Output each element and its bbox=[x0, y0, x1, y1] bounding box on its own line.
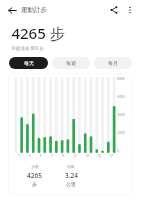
staticText: 4000 bbox=[117, 113, 125, 117]
staticText: 4265 bbox=[27, 171, 42, 180]
staticText: 3 bbox=[29, 154, 31, 158]
staticText: 每月 bbox=[108, 60, 118, 66]
staticText: 15 bbox=[97, 154, 101, 158]
button[interactable]: 距離 bbox=[53, 165, 89, 187]
button[interactable]: 每月 bbox=[94, 57, 132, 69]
staticText: 7 bbox=[51, 154, 53, 158]
staticText: 6000 bbox=[117, 95, 125, 99]
staticText: 0 bbox=[117, 149, 119, 153]
staticText: 11 bbox=[73, 154, 77, 158]
staticText: 8000 bbox=[117, 77, 125, 81]
button[interactable]: More options bbox=[122, 2, 138, 18]
staticText: 目標達成 800 步 bbox=[11, 45, 44, 51]
button[interactable]: 步數 bbox=[16, 165, 53, 187]
staticText: 5 bbox=[40, 154, 42, 158]
button[interactable]: Share bbox=[106, 2, 122, 18]
staticText: 1 bbox=[18, 154, 20, 158]
staticText: 步 bbox=[32, 181, 37, 187]
staticText: 17 bbox=[109, 154, 113, 158]
staticText: 步數 bbox=[31, 165, 39, 170]
staticText: 每週 bbox=[66, 60, 76, 66]
staticText: 13 bbox=[85, 154, 89, 158]
button[interactable]: Back bbox=[4, 2, 20, 18]
staticText: 2000 bbox=[117, 131, 125, 135]
staticText: 9 bbox=[62, 154, 64, 158]
staticText: 4265 步 bbox=[11, 23, 65, 43]
staticText: 距離 bbox=[67, 165, 75, 170]
button[interactable]: 每天 bbox=[9, 57, 48, 69]
staticText: 每天 bbox=[24, 60, 34, 66]
staticText: 3.24 bbox=[65, 171, 78, 180]
staticText: 運動計步 bbox=[21, 6, 47, 14]
button[interactable]: 每週 bbox=[52, 57, 90, 69]
staticText: 公里 bbox=[66, 181, 76, 187]
